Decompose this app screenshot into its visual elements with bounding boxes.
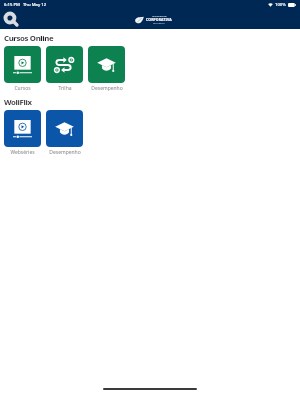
- staticText: Thu May 12: [23, 2, 47, 8]
- staticText: Cursos Online: [4, 33, 54, 44]
- staticText: UNIVERSIDADE: [152, 15, 167, 17]
- button[interactable]: [46, 110, 83, 147]
- staticText: 6:15 PM: [4, 2, 20, 8]
- staticText: Trilha: [58, 85, 72, 92]
- button[interactable]: [46, 46, 83, 83]
- staticText: Webséries: [10, 149, 35, 156]
- staticText: Cursos: [14, 85, 31, 92]
- button[interactable]: [88, 46, 125, 83]
- staticText: Desempenho: [49, 149, 81, 156]
- staticText: CORPORATIVA: [146, 17, 172, 22]
- staticText: WOLI GRUPO: [153, 22, 165, 24]
- button[interactable]: Search: [4, 12, 19, 27]
- staticText: 100%: [275, 2, 286, 8]
- button[interactable]: [4, 110, 41, 147]
- button[interactable]: [4, 46, 41, 83]
- staticText: Desempenho: [91, 85, 123, 92]
- staticText: WoliFlix: [4, 97, 32, 108]
